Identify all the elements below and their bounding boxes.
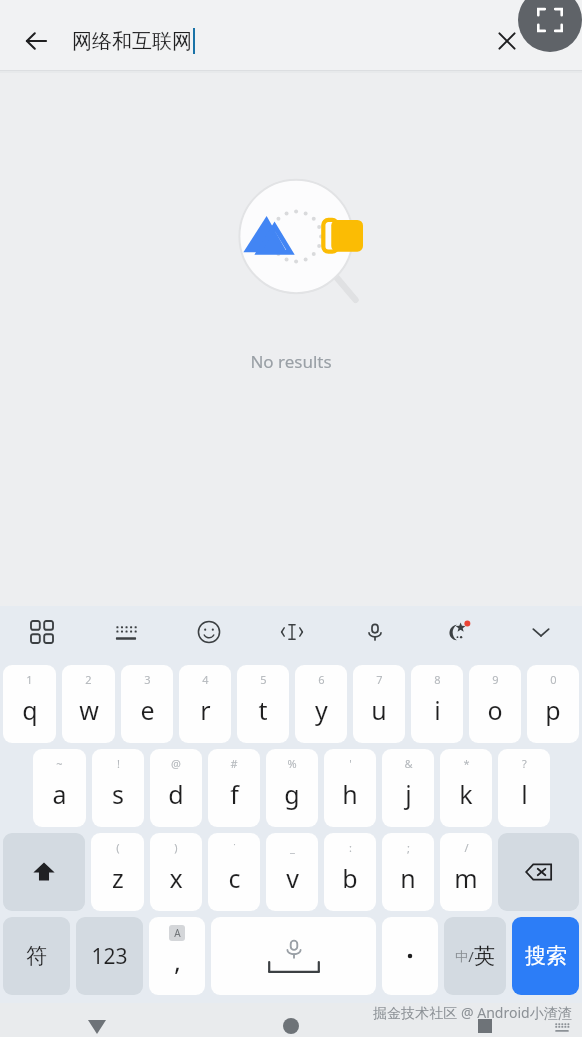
staticText: m [454,861,478,895]
button[interactable]: ~ [33,749,86,827]
button[interactable]: % [266,749,318,827]
staticText: q [22,693,38,727]
button[interactable]: Stickers [416,606,499,658]
button[interactable]: Period [382,917,438,995]
staticText: h [342,777,358,811]
staticText: l [521,777,528,811]
staticText: , [174,943,181,978]
staticText: 英 [474,943,495,969]
staticText: ~ [56,756,63,771]
staticText: 1 [26,672,33,687]
button[interactable]: # [208,749,260,827]
button[interactable]: 9 [469,665,521,743]
staticText: 123 [91,942,128,971]
staticText: _ [290,840,295,855]
button[interactable]: Keyboard layout [84,606,167,658]
button[interactable]: 7 [353,665,405,743]
button[interactable]: _ [266,833,318,911]
staticText: o [487,693,503,727]
button[interactable]: Switch keyboard [554,1021,570,1033]
staticText: v [286,861,299,895]
staticText: z [112,861,124,895]
button[interactable]: 搜索 [512,917,579,995]
staticText: y [315,693,328,727]
button[interactable]: & [382,749,434,827]
staticText: ? [522,756,527,771]
button[interactable]: Space [211,917,376,995]
staticText: : [349,840,352,855]
staticText: 4 [202,672,209,687]
button[interactable]: Back [0,1003,194,1037]
button[interactable]: / [440,833,492,911]
staticText: e [140,693,155,727]
button[interactable]: Emoji [167,606,250,658]
button[interactable]: 符 [3,917,70,995]
button[interactable]: 8 [411,665,463,743]
button[interactable]: 4 [179,665,231,743]
button[interactable]: Back [0,12,72,70]
button[interactable]: : [324,833,376,911]
staticText: w [79,693,99,727]
staticText: ˙ [233,840,236,855]
button[interactable]: 0 [527,665,579,743]
button[interactable]: ? [498,749,550,827]
staticText: ' [349,756,352,771]
staticText: n [400,861,416,895]
staticText: ! [117,756,120,771]
button[interactable]: ˙ [208,833,260,911]
staticText: 6 [318,672,325,687]
button[interactable]: Hide keyboard [499,606,582,658]
staticText: ; [407,840,410,855]
button[interactable]: 5 [237,665,289,743]
staticText: 7 [376,672,383,687]
button[interactable]: A [149,917,205,995]
button[interactable]: ! [92,749,144,827]
button[interactable]: Text editing [250,606,333,658]
staticText: 0 [550,672,557,687]
staticText: d [168,777,184,811]
staticText: A [174,926,181,940]
button[interactable]: 123 [76,917,143,995]
staticText: @ [171,756,181,771]
button[interactable]: ) [150,833,202,911]
button[interactable]: Apps [0,606,84,658]
staticText: r [200,693,211,727]
button[interactable]: 6 [295,665,347,743]
staticText: 5 [260,672,267,687]
button[interactable]: Shift [3,833,85,911]
button[interactable]: * [440,749,492,827]
button[interactable]: Home [194,1003,388,1037]
button[interactable]: 1 [3,665,56,743]
staticText: f [230,777,239,811]
staticText: ( [116,840,120,855]
staticText: # [230,756,238,771]
staticText: a [52,777,67,811]
staticText: 2 [85,672,92,687]
button[interactable]: Screen recorder [518,0,582,52]
staticText: 搜索 [525,943,567,969]
staticText: i [434,693,441,727]
staticText: 网络和互联网 [72,29,192,54]
button[interactable]: Voice input [333,606,416,658]
staticText: No results [250,350,332,373]
staticText: 9 [492,672,499,687]
button[interactable]: Recents [388,1003,582,1037]
staticText: t [258,693,268,727]
button[interactable]: ' [324,749,376,827]
button[interactable]: ( [91,833,144,911]
button[interactable]: @ [150,749,202,827]
staticText: / [468,946,474,966]
button[interactable]: Backspace [498,833,579,911]
button[interactable]: 中 [444,917,506,995]
staticText: g [284,777,300,811]
button[interactable]: Clear [480,12,534,70]
staticText: p [545,693,561,727]
staticText: ) [174,840,178,855]
staticText: b [342,861,358,895]
button[interactable]: 3 [121,665,173,743]
button[interactable]: More options [534,12,582,70]
staticText: % [287,756,297,771]
button[interactable]: 2 [62,665,115,743]
staticText: 8 [434,672,441,687]
button[interactable]: ; [382,833,434,911]
